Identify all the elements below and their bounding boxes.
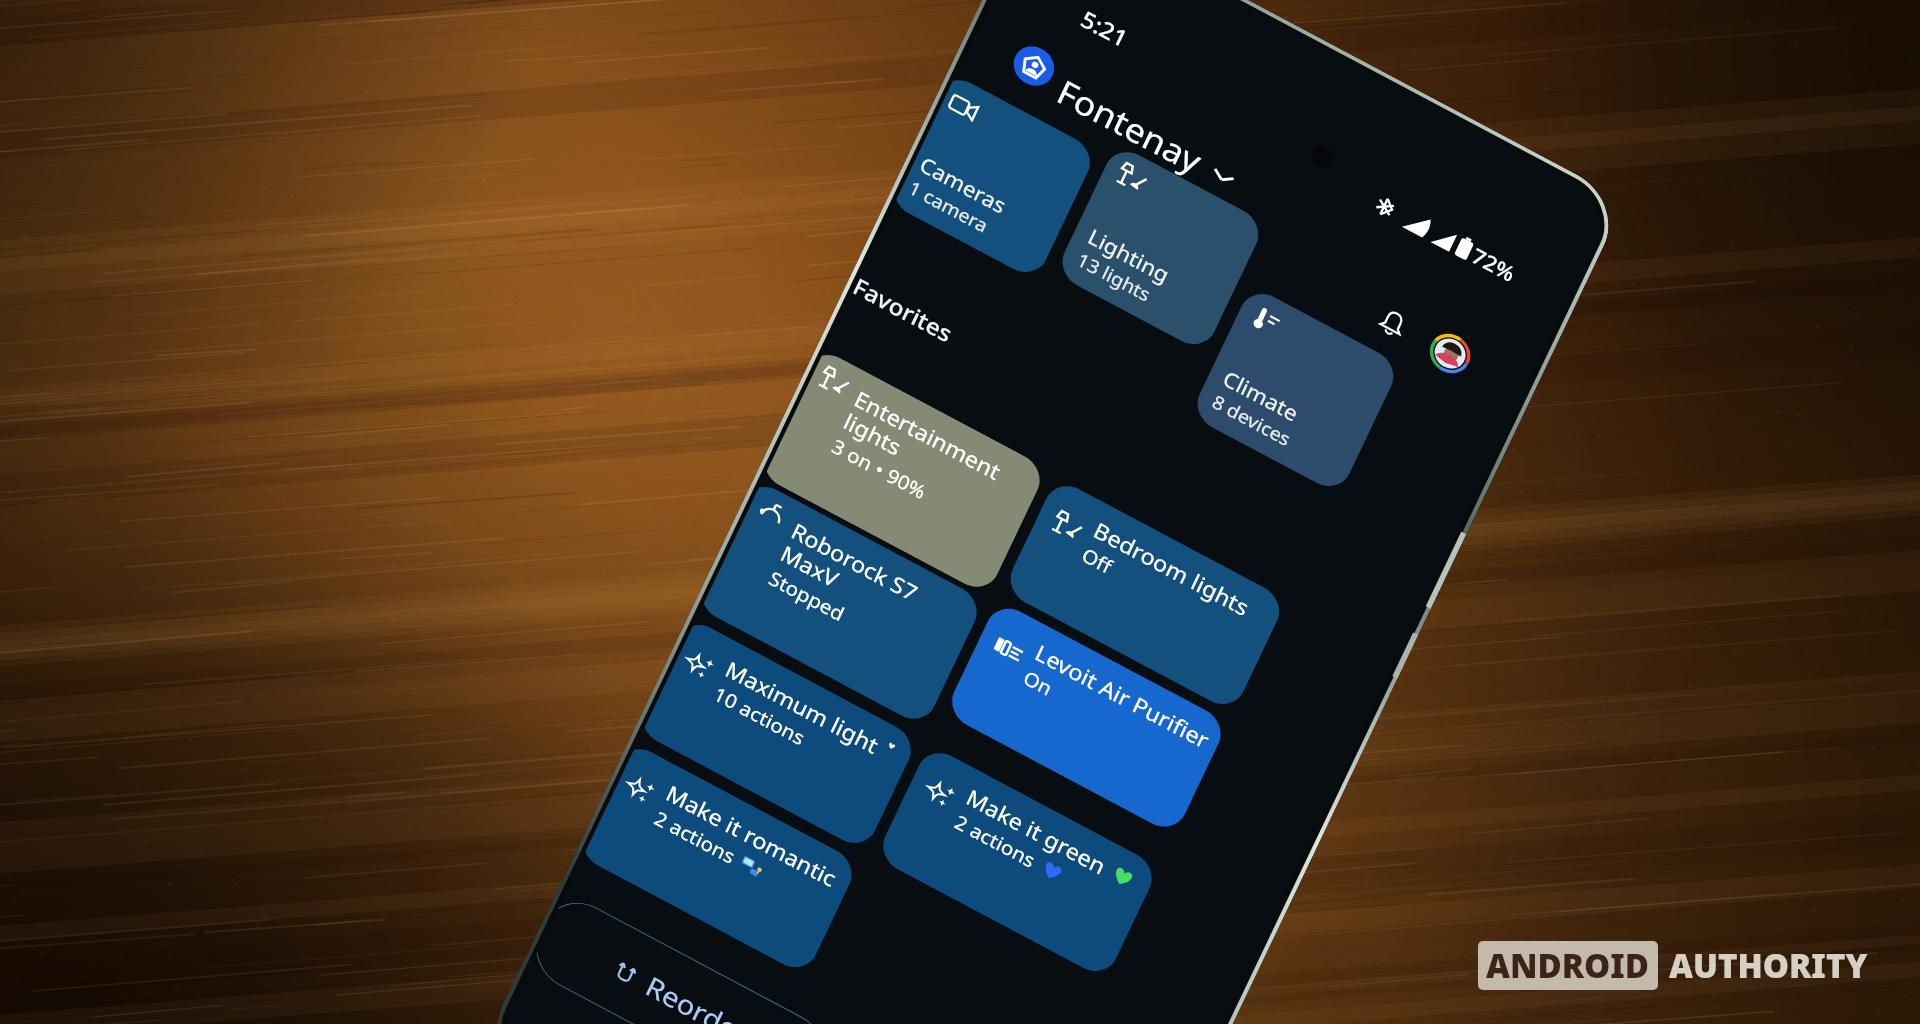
staticText: 8 devices <box>1204 377 1299 464</box>
staticText: Cameras <box>910 136 1016 233</box>
staticText: 3 on • 90% <box>823 418 935 519</box>
staticText: Favorites <box>844 256 963 363</box>
button[interactable]: Climate <box>1164 261 1426 519</box>
button[interactable]: Notifications <box>1358 289 1427 357</box>
staticText: Levoit Air Purifier <box>1026 611 1213 778</box>
staticText: Stopped <box>761 553 854 638</box>
staticText: Make it romantic <box>657 752 844 918</box>
staticText: On <box>1015 660 1061 705</box>
button[interactable]: Reorder <box>514 849 853 1024</box>
button[interactable]: Entertainment lights <box>739 315 1072 631</box>
staticText: AUTHORITY <box>1669 943 1868 988</box>
button[interactable]: Lighting <box>1029 119 1291 377</box>
staticText: 1 camera <box>900 163 996 250</box>
staticText: Make it green <box>957 760 1116 902</box>
staticText: Lighting <box>1079 209 1179 301</box>
staticText: 2 actions <box>946 796 1045 885</box>
staticText: Fontenay <box>1043 46 1217 205</box>
staticText: 13 lights <box>1069 236 1159 318</box>
staticText: Maximum light <box>716 630 888 783</box>
button[interactable]: Home <box>1001 33 1067 99</box>
button[interactable]: Levoit Air Purifier <box>922 563 1250 872</box>
staticText: Entertainment lights <box>830 361 1015 531</box>
staticText: Climate <box>1214 352 1308 439</box>
button[interactable]: Bedroom lights <box>981 441 1309 749</box>
staticText: Roborock S7 MaxV <box>767 496 933 650</box>
button[interactable]: Fontenay <box>1038 37 1255 233</box>
staticText: Off <box>1074 537 1121 584</box>
staticText: 10 actions <box>705 666 814 764</box>
button[interactable]: Roborock S7 MaxV <box>677 447 1009 763</box>
button[interactable]: Account <box>1415 319 1485 388</box>
button[interactable]: Cameras <box>868 53 1123 304</box>
staticText: ANDROID <box>1486 943 1650 988</box>
staticText: 72% <box>1462 234 1525 294</box>
staticText: 2 actions <box>646 792 745 881</box>
button[interactable]: Make it romantic <box>561 709 881 1011</box>
staticText: Bedroom lights <box>1084 491 1259 646</box>
button[interactable]: Make it green <box>853 708 1182 1016</box>
staticText: 5:21 <box>1071 0 1138 60</box>
button[interactable]: Maximum light <box>620 585 941 887</box>
staticText: Reorder <box>634 952 761 1024</box>
